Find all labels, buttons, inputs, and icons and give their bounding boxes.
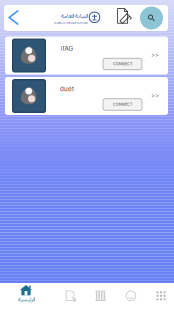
staticText: >> xyxy=(151,92,159,100)
button[interactable]: CONNECT xyxy=(103,58,142,70)
button[interactable]: Back xyxy=(4,6,24,28)
button[interactable]: Documents xyxy=(115,6,135,26)
button[interactable]: Services xyxy=(87,285,113,307)
staticText: الرئيسية xyxy=(17,294,34,305)
staticText: >> xyxy=(151,52,159,59)
button[interactable]: iTAG xyxy=(5,36,168,74)
staticText: CONNECT xyxy=(113,102,132,107)
button[interactable]: CONNECT xyxy=(103,99,142,110)
button[interactable]: duet xyxy=(5,77,168,115)
button[interactable]: Requests xyxy=(58,285,84,307)
staticText: iTAG xyxy=(60,45,73,52)
button[interactable]: Profile xyxy=(118,285,144,307)
staticText: duet xyxy=(60,85,74,93)
button[interactable]: More xyxy=(148,285,174,307)
staticText: النيابة العامة xyxy=(60,10,87,22)
staticText: CONNECT xyxy=(113,62,132,66)
button[interactable]: الرئيسية xyxy=(4,283,48,310)
staticText: PUBLIC PROSECUTION xyxy=(54,21,87,25)
button[interactable]: Search xyxy=(140,6,163,29)
